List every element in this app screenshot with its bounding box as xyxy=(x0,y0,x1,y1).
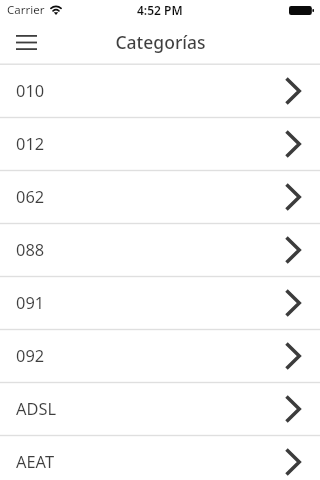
staticText: 062 xyxy=(16,185,45,207)
staticText: 012 xyxy=(16,132,45,154)
button[interactable]: AEAT xyxy=(0,435,320,480)
button[interactable]: 088 xyxy=(0,223,320,276)
staticText: 088 xyxy=(16,238,45,260)
staticText: Categorías xyxy=(115,30,206,54)
button[interactable]: 092 xyxy=(0,329,320,382)
staticText: ADSL xyxy=(16,397,57,419)
button[interactable]: Menu xyxy=(8,22,44,62)
staticText: 010 xyxy=(16,79,45,101)
staticText: 092 xyxy=(16,344,45,366)
button[interactable]: 010 xyxy=(0,64,320,117)
staticText: 4:52 PM xyxy=(137,2,183,18)
button[interactable]: 012 xyxy=(0,117,320,170)
button[interactable]: ADSL xyxy=(0,382,320,435)
staticText: AEAT xyxy=(16,450,55,472)
staticText: 091 xyxy=(16,291,45,313)
button[interactable]: 091 xyxy=(0,276,320,329)
button[interactable]: 062 xyxy=(0,170,320,223)
staticText: Carrier xyxy=(7,2,45,18)
